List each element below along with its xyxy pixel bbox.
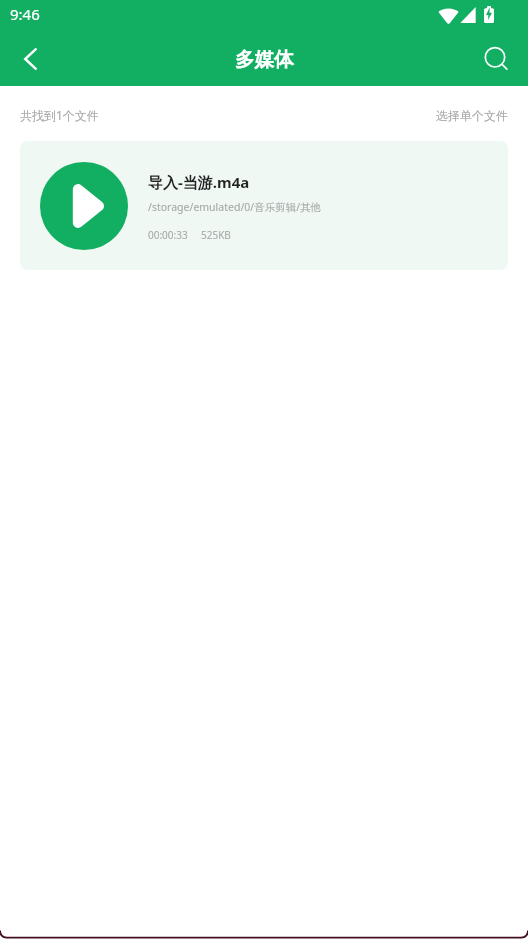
staticText: 525KB [201,228,231,242]
staticText: 导入-当游.m4a [148,172,250,192]
staticText: 00:00:33 [148,228,188,242]
staticText: 多媒体 [235,47,294,72]
button[interactable]: Search [468,31,526,88]
button[interactable]: 导入-当游.m4a [20,141,508,270]
button[interactable]: 选择单个文件 [436,108,508,123]
staticText: 共找到1个文件 [20,107,99,123]
staticText: 选择单个文件 [436,108,508,123]
staticText: 9:46 [10,4,40,24]
staticText: /storage/emulated/0/音乐剪辑/其他 [148,200,322,214]
button[interactable]: Back [1,30,59,87]
